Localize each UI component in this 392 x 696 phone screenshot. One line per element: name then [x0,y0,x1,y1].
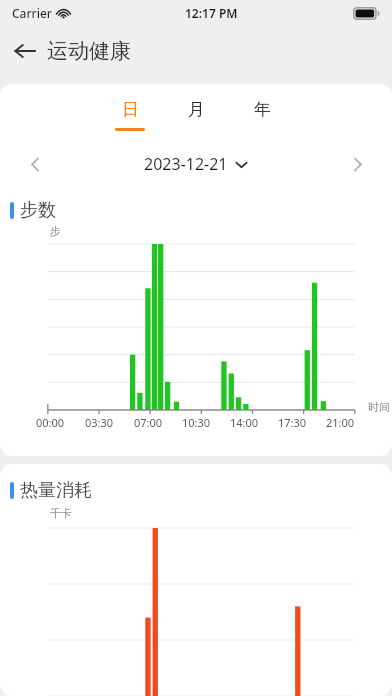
staticText: 千卡 [50,506,72,520]
staticText: 时间 [368,400,390,414]
staticText: 2023-12-21 [144,153,228,175]
button[interactable]: 日 [97,99,163,131]
staticText: 10:30 [182,415,211,430]
button[interactable]: 2023-12-21 [54,153,338,175]
staticText: 17:30 [278,415,307,430]
button[interactable]: 月 [163,99,229,131]
staticText: 月 [188,99,205,120]
staticText: 年 [254,99,271,120]
staticText: 03:30 [85,415,114,430]
staticText: Carrier [12,5,52,21]
staticText: 运动健康 [47,38,131,64]
staticText: 07:00 [134,415,163,430]
staticText: 21:00 [326,415,355,430]
staticText: 日 [122,99,139,120]
staticText: 12:17 PM [185,5,238,21]
staticText: 热量消耗 [20,479,92,502]
staticText: 14:00 [230,415,259,430]
button[interactable]: Previous day [16,145,54,183]
button[interactable]: 年 [229,99,295,131]
button[interactable]: Next day [338,145,376,183]
staticText: 00:00 [36,415,65,430]
button[interactable]: Back [5,31,45,71]
staticText: 步数 [20,199,56,222]
staticText: 步 [50,224,61,238]
